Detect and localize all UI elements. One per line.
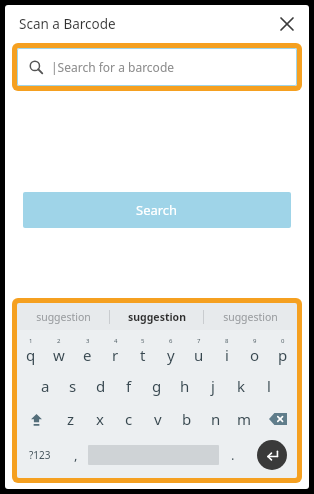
button[interactable]: k <box>227 371 255 401</box>
button[interactable]: 9 <box>241 334 269 368</box>
button[interactable]: suggestion <box>17 303 109 330</box>
staticText: 9 <box>253 337 257 345</box>
staticText: r <box>112 345 119 365</box>
button[interactable]: |Search for a barcode <box>17 48 297 86</box>
staticText: 5 <box>141 337 145 345</box>
staticText: u <box>194 345 204 365</box>
staticText: 3 <box>86 337 90 345</box>
button[interactable]: a <box>31 371 59 401</box>
button[interactable]: s <box>59 371 87 401</box>
staticText: q <box>26 345 36 365</box>
staticText: y <box>167 345 175 365</box>
staticText: e <box>83 345 92 365</box>
staticText: s <box>69 376 77 396</box>
staticText: w <box>53 345 65 365</box>
button[interactable]: 0 <box>269 334 297 368</box>
button[interactable]: 2 <box>45 334 73 368</box>
button[interactable]: 4 <box>101 334 129 368</box>
staticText: suggestion <box>128 310 186 324</box>
button[interactable]: 6 <box>157 334 185 368</box>
staticText: 6 <box>169 337 173 345</box>
staticText: Search <box>136 201 178 219</box>
button[interactable]: Close <box>274 11 300 37</box>
staticText: 0 <box>281 337 285 345</box>
staticText: ?123 <box>29 448 51 462</box>
staticText: 1 <box>29 337 33 345</box>
staticText: l <box>267 376 271 396</box>
staticText: , <box>74 446 78 464</box>
staticText: o <box>250 345 260 365</box>
button[interactable]: Search <box>23 192 291 228</box>
button[interactable]: 8 <box>213 334 241 368</box>
button[interactable]: , <box>63 437 88 473</box>
staticText: x <box>96 409 104 429</box>
button[interactable]: . <box>219 437 247 473</box>
button[interactable]: 5 <box>129 334 157 368</box>
staticText: suggestion <box>36 310 91 324</box>
button[interactable]: f <box>115 371 143 401</box>
button[interactable]: c <box>114 404 143 434</box>
staticText: v <box>154 409 162 429</box>
button[interactable]: 7 <box>185 334 213 368</box>
staticText: Scan a Barcode <box>19 15 116 33</box>
staticText: p <box>278 345 288 365</box>
staticText: g <box>152 376 162 396</box>
button[interactable]: Enter <box>257 440 287 470</box>
button[interactable]: 1 <box>17 334 45 368</box>
staticText: d <box>96 376 106 396</box>
button[interactable]: g <box>143 371 171 401</box>
staticText: k <box>237 376 246 396</box>
staticText: a <box>41 376 50 396</box>
button[interactable]: b <box>172 404 201 434</box>
staticText: t <box>140 345 146 365</box>
staticText: 8 <box>225 337 229 345</box>
staticText: 4 <box>114 337 118 345</box>
staticText: b <box>182 409 192 429</box>
button[interactable]: m <box>230 404 259 434</box>
staticText: f <box>126 376 132 396</box>
button[interactable]: n <box>201 404 230 434</box>
staticText: j <box>211 376 215 396</box>
staticText: |Search for a barcode <box>51 59 175 75</box>
staticText: . <box>231 446 235 464</box>
staticText: m <box>237 409 252 429</box>
staticText: suggestion <box>223 310 278 324</box>
staticText: c <box>125 409 133 429</box>
button[interactable]: h <box>171 371 199 401</box>
staticText: n <box>211 409 221 429</box>
staticText: 7 <box>197 337 201 345</box>
staticText: 2 <box>57 337 61 345</box>
button[interactable]: suggestion <box>204 303 297 330</box>
staticText: h <box>180 376 190 396</box>
staticText: i <box>225 345 229 365</box>
button[interactable]: ?123 <box>17 437 63 473</box>
button[interactable]: v <box>143 404 172 434</box>
button[interactable]: 3 <box>73 334 101 368</box>
button[interactable]: Backspace <box>259 404 297 434</box>
staticText: z <box>67 409 75 429</box>
button[interactable]: j <box>199 371 227 401</box>
button[interactable]: suggestion <box>110 303 203 330</box>
button[interactable]: z <box>56 404 85 434</box>
button[interactable]: l <box>255 371 283 401</box>
button[interactable]: d <box>87 371 115 401</box>
button[interactable]: Shift <box>17 404 56 434</box>
button[interactable]: x <box>85 404 114 434</box>
